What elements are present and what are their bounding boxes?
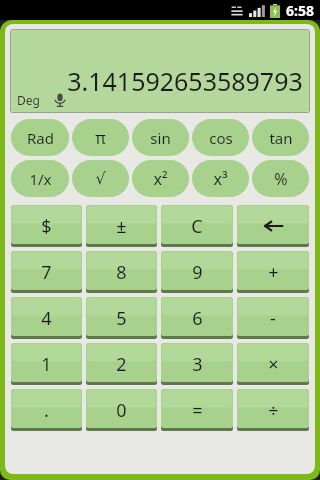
staticText: 1: [41, 352, 52, 377]
staticText: ×: [268, 352, 279, 377]
button[interactable]: sin: [132, 119, 189, 156]
button[interactable]: +: [237, 251, 309, 293]
button[interactable]: 1: [11, 343, 82, 385]
button[interactable]: 3: [161, 343, 233, 385]
staticText: Rad: [27, 128, 54, 148]
staticText: sin: [150, 128, 171, 148]
staticText: -: [270, 306, 276, 331]
staticText: %: [274, 168, 288, 190]
button[interactable]: -: [237, 297, 309, 339]
button[interactable]: 5: [86, 297, 157, 339]
staticText: tan: [269, 128, 293, 148]
button[interactable]: x²: [132, 160, 189, 197]
other: Backspace: [261, 218, 285, 234]
staticText: 6: [192, 306, 203, 331]
staticText: C: [191, 214, 203, 239]
button[interactable]: 4: [11, 297, 82, 339]
button[interactable]: ×: [237, 343, 309, 385]
button[interactable]: $: [11, 205, 82, 247]
button[interactable]: √: [72, 160, 129, 197]
staticText: Deg: [17, 92, 40, 108]
button[interactable]: ÷: [237, 389, 309, 431]
staticText: +: [268, 260, 279, 285]
button[interactable]: 7: [11, 251, 82, 293]
button[interactable]: 9: [161, 251, 233, 293]
button[interactable]: 2: [86, 343, 157, 385]
staticText: =: [192, 398, 203, 423]
button[interactable]: 3.141592653589793: [11, 30, 309, 112]
staticText: ÷: [268, 398, 279, 423]
staticText: 3.141592653589793: [67, 64, 303, 98]
staticText: 8: [116, 260, 127, 285]
button[interactable]: x³: [192, 160, 249, 197]
button[interactable]: cos: [192, 119, 249, 156]
staticText: 7: [41, 260, 52, 285]
button[interactable]: 8: [86, 251, 157, 293]
staticText: x²: [153, 168, 168, 190]
staticText: $: [41, 214, 52, 239]
button[interactable]: ±: [86, 205, 157, 247]
button[interactable]: Voice input: [52, 92, 68, 108]
staticText: π: [95, 127, 106, 149]
button[interactable]: =: [161, 389, 233, 431]
staticText: ±: [116, 214, 127, 239]
staticText: 6:58: [286, 1, 314, 20]
button[interactable]: Backspace: [237, 205, 309, 247]
button[interactable]: C: [161, 205, 233, 247]
staticText: x³: [213, 168, 228, 190]
button[interactable]: 1/x: [11, 160, 69, 197]
staticText: 2: [116, 352, 127, 377]
staticText: 1/x: [29, 169, 52, 189]
button[interactable]: tan: [252, 119, 309, 156]
button[interactable]: π: [72, 119, 129, 156]
button[interactable]: 0: [86, 389, 157, 431]
staticText: .: [44, 398, 49, 423]
staticText: √: [95, 169, 106, 188]
staticText: 5: [116, 306, 127, 331]
staticText: 0: [116, 398, 127, 423]
staticText: 3: [192, 352, 203, 377]
button[interactable]: 6: [161, 297, 233, 339]
button[interactable]: %: [252, 160, 309, 197]
staticText: 9: [192, 260, 203, 285]
staticText: cos: [209, 128, 233, 148]
staticText: 4: [41, 306, 52, 331]
button[interactable]: Rad: [11, 119, 69, 156]
button[interactable]: .: [11, 389, 82, 431]
